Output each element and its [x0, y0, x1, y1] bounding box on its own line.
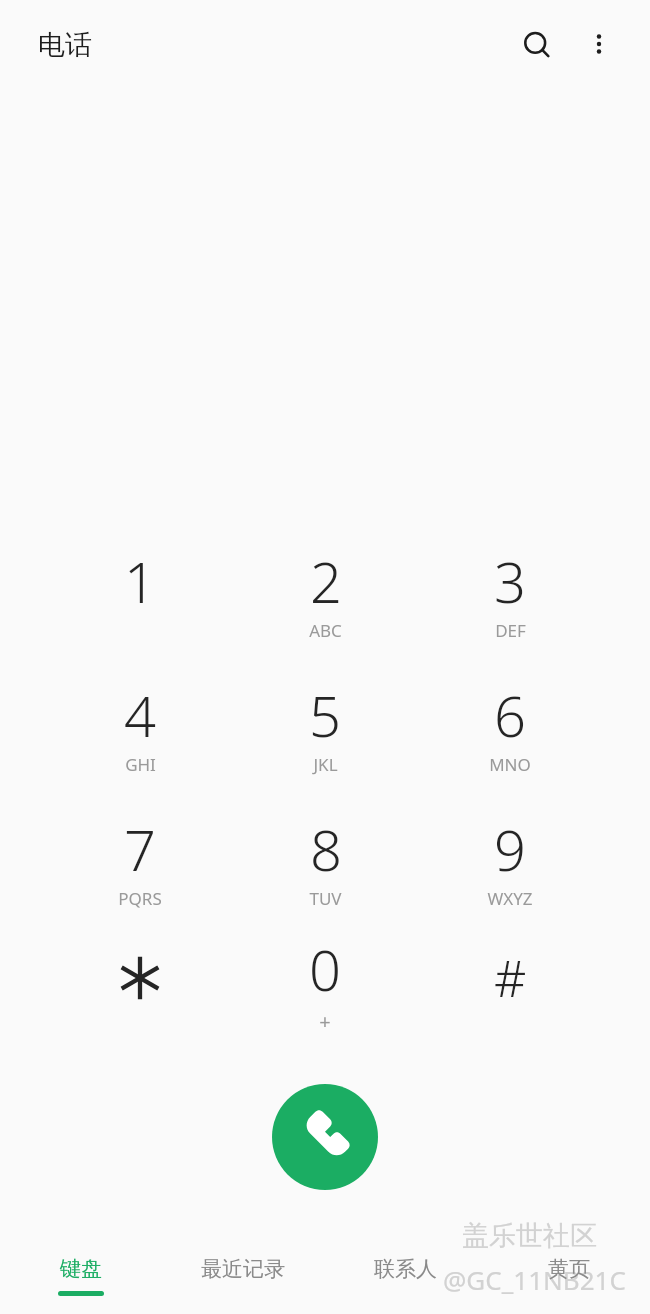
staticText: 0 [309, 931, 341, 1007]
staticText: 电话 [38, 28, 92, 62]
staticText: 9 [494, 811, 526, 887]
staticText: 3 [494, 543, 526, 619]
staticText: 4 [124, 677, 156, 753]
button[interactable]: 1 [78, 543, 202, 655]
staticText: 7 [124, 811, 156, 887]
staticText: TUV [309, 887, 342, 910]
staticText: PQRS [118, 887, 162, 910]
staticText: # [494, 944, 527, 1012]
button[interactable]: 键盘 [0, 1230, 162, 1314]
button[interactable]: Search [509, 17, 565, 73]
button[interactable]: 黄页 [487, 1230, 650, 1314]
staticText: DEF [495, 619, 526, 642]
button[interactable]: 5 [263, 677, 387, 789]
button[interactable]: Call [272, 1084, 378, 1190]
button[interactable]: 6 [448, 677, 572, 789]
staticText: 盖乐世社区 [462, 1219, 597, 1253]
button[interactable]: 4 [78, 677, 202, 789]
staticText: 最近记录 [201, 1256, 285, 1282]
staticText: + [319, 1008, 331, 1035]
staticText: 1 [124, 543, 156, 619]
staticText: MNO [489, 753, 531, 776]
button[interactable]: 7 [78, 811, 202, 923]
button[interactable]: Pound [448, 932, 572, 1024]
staticText: 6 [494, 677, 526, 753]
button[interactable]: 联系人 [324, 1230, 487, 1314]
staticText: 联系人 [374, 1256, 437, 1282]
staticText: 2 [310, 543, 342, 619]
button[interactable]: 9 [448, 811, 572, 923]
staticText: ABC [309, 619, 342, 642]
button[interactable]: 3 [448, 543, 572, 655]
staticText: 黄页 [548, 1256, 590, 1282]
button[interactable]: Star [78, 932, 202, 1024]
staticText: WXYZ [487, 887, 533, 910]
staticText: 5 [309, 677, 341, 753]
staticText: 键盘 [60, 1256, 102, 1282]
button[interactable]: 0 [265, 931, 385, 1041]
button[interactable]: 2 [263, 543, 387, 655]
button[interactable]: 8 [263, 811, 387, 923]
button[interactable]: 最近记录 [162, 1230, 324, 1314]
staticText: JKL [313, 753, 338, 776]
staticText: 8 [310, 811, 342, 887]
staticText: @GC_11NB21C [443, 1262, 626, 1297]
staticText: GHI [125, 753, 156, 776]
button[interactable]: More options [572, 17, 626, 71]
